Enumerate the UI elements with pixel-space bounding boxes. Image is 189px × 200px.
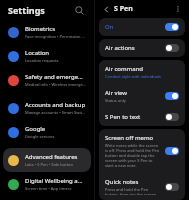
button[interactable]: Toggle — [165, 183, 179, 191]
staticText: Digital Wellbeing and parental controls — [25, 177, 86, 185]
staticText: Manage accounts • Smart Switch — [25, 110, 86, 115]
staticText: Status only — [105, 98, 126, 103]
staticText: On — [105, 23, 114, 31]
button[interactable]: Toggle — [165, 92, 179, 100]
button[interactable]: Toggle — [165, 147, 179, 155]
button[interactable]: Screen off memo — [99, 129, 185, 173]
button[interactable]: Toggle — [165, 113, 179, 121]
staticText: Conduct style with individuals — [105, 74, 161, 79]
button[interactable]: Air view — [99, 84, 185, 108]
staticText: Google — [25, 125, 46, 133]
button[interactable]: Toggle — [165, 44, 179, 52]
button[interactable]: Advanced features — [3, 148, 91, 172]
staticText: Face recognition • Permission manager — [25, 34, 86, 39]
button[interactable]: Quick notes — [99, 173, 185, 200]
staticText: Write notes while the screen is off. Pre… — [105, 143, 161, 168]
button[interactable]: Toggle — [165, 23, 179, 31]
button[interactable]: Biometrics — [3, 20, 91, 44]
button[interactable]: Air command — [99, 60, 185, 84]
button[interactable]: Safety and emergency — [3, 68, 91, 92]
staticText: Google services — [25, 134, 55, 139]
button[interactable]: S Pen to text — [99, 108, 185, 126]
staticText: Biometrics — [25, 25, 56, 33]
staticText: S Pen to text — [105, 113, 141, 121]
button[interactable]: Google — [3, 120, 91, 144]
button[interactable]: On — [99, 18, 185, 36]
staticText: Air actions — [105, 44, 135, 52]
staticText: Screen off memo — [105, 134, 154, 142]
staticText: Press and hold the Pen button, then tap … — [105, 187, 161, 195]
staticText: Location — [25, 49, 50, 57]
staticText: Location requests — [25, 58, 59, 63]
staticText: Settings — [8, 4, 45, 16]
staticText: S Pen — [114, 4, 133, 14]
staticText: Medical info • Wireless emergency alerts — [25, 82, 86, 87]
button[interactable]: Location — [3, 44, 91, 68]
button[interactable]: Digital Wellbeing and parental controls — [3, 172, 91, 196]
staticText: Air view — [105, 89, 127, 97]
button[interactable]: Back — [100, 3, 112, 15]
button[interactable]: Accounts and backup — [3, 96, 91, 120]
staticText: Safety and emergency — [25, 73, 86, 81]
staticText: Quick notes — [105, 178, 139, 186]
staticText: Air command — [105, 65, 143, 73]
staticText: Labs • S Pen • Side button — [25, 162, 73, 167]
staticText: Accounts and backup — [25, 101, 86, 109]
staticText: Advanced features — [25, 153, 78, 161]
button[interactable]: Air actions — [99, 39, 185, 57]
staticText: Screen time • App timers — [25, 186, 72, 191]
button[interactable]: More options — [172, 3, 184, 15]
button[interactable]: Search — [72, 3, 86, 17]
